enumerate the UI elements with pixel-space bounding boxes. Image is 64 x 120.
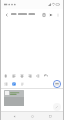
button[interactable]: Back bbox=[9, 112, 19, 120]
button[interactable]: More options bbox=[54, 11, 61, 18]
button[interactable]: Back bbox=[3, 11, 10, 18]
button[interactable]: Home bbox=[27, 112, 37, 120]
button[interactable]: Undo bbox=[43, 73, 49, 79]
button[interactable]: Align center bbox=[19, 73, 25, 79]
button[interactable]: Bulleted list bbox=[19, 81, 25, 87]
button[interactable]: Numbered list bbox=[3, 81, 9, 87]
button[interactable]: Attach bbox=[40, 11, 47, 18]
button[interactable]: Send bbox=[47, 11, 54, 18]
button[interactable]: Recent apps bbox=[45, 112, 55, 120]
button[interactable]: Text color bbox=[11, 81, 17, 87]
button[interactable]: Attached image bbox=[4, 90, 24, 106]
button[interactable]: Indent bbox=[35, 73, 41, 79]
button[interactable]: Compose bbox=[53, 103, 61, 111]
button[interactable]: Align left bbox=[11, 73, 17, 79]
button[interactable]: Insert bbox=[53, 80, 61, 88]
button[interactable]: Bold bbox=[3, 73, 9, 79]
button[interactable]: Align right bbox=[27, 73, 33, 79]
